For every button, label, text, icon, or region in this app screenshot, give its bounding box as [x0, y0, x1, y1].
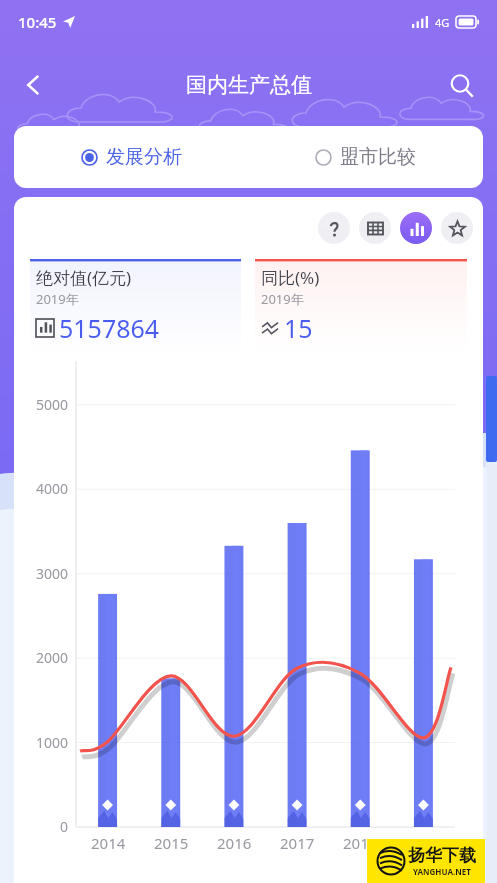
staticText: 绝对值(亿元): [36, 266, 132, 289]
staticText: 2019年: [261, 290, 304, 308]
staticText: 1000: [35, 733, 68, 752]
staticText: 盟市比较: [340, 145, 416, 169]
button[interactable]: 绝对值(亿元): [30, 259, 241, 355]
staticText: 同比(%): [261, 266, 320, 289]
staticText: 5157864: [59, 311, 160, 345]
staticText: 15: [284, 311, 313, 345]
button[interactable]: Favorite: [441, 212, 473, 244]
staticText: 2019年: [36, 290, 79, 308]
staticText: 10:45: [18, 12, 57, 32]
button[interactable]: 发展分析: [14, 126, 248, 188]
staticText: 2014: [91, 833, 126, 853]
staticText: 4G: [435, 15, 450, 30]
button[interactable]: Help: [318, 212, 350, 244]
button[interactable]: Back: [10, 61, 58, 109]
staticText: 2000: [35, 648, 68, 667]
button[interactable]: Chart view: [400, 212, 432, 244]
staticText: 0: [59, 817, 68, 836]
staticText: 3000: [35, 564, 68, 583]
staticText: 发展分析: [106, 145, 182, 169]
button[interactable]: Search: [437, 61, 485, 109]
staticText: 2018: [343, 833, 378, 853]
button[interactable]: 盟市比较: [248, 126, 483, 188]
staticText: 2015: [154, 833, 189, 853]
staticText: YANGHUA.NET: [413, 866, 471, 877]
staticText: 5000: [35, 395, 68, 414]
staticText: 2017: [280, 833, 315, 853]
staticText: 2019: [406, 833, 441, 853]
staticText: 国内生产总值: [186, 72, 312, 98]
button[interactable]: Table view: [359, 212, 391, 244]
button[interactable]: 同比(%): [255, 259, 467, 355]
staticText: 2016: [217, 833, 252, 853]
staticText: 4000: [35, 479, 68, 498]
staticText: 扬华下载: [408, 845, 476, 866]
